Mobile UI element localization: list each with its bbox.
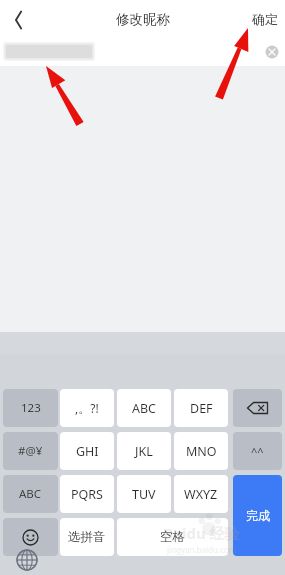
button[interactable]: PQRS [60, 475, 114, 513]
button[interactable]: GHI [60, 432, 114, 470]
staticText: #@¥ [18, 443, 43, 459]
button[interactable]: #@¥ [3, 432, 58, 470]
button[interactable]: ABC [3, 475, 58, 513]
button[interactable]: 选拼音 [60, 518, 114, 556]
staticText: TUV [132, 486, 156, 503]
button[interactable]: Clear text [265, 45, 279, 59]
staticText: 123 [21, 400, 41, 416]
staticText: GHI [76, 443, 99, 460]
button[interactable]: ,。?! [60, 389, 114, 427]
staticText: DEF [190, 400, 213, 417]
button[interactable]: Emoji [3, 518, 58, 556]
button[interactable]: 空格 [117, 518, 228, 556]
staticText: 选拼音 [68, 529, 106, 545]
staticText: ^^ [251, 444, 264, 459]
button[interactable]: WXYZ [174, 475, 228, 513]
button[interactable]: MNO [174, 432, 228, 470]
button[interactable]: JKL [117, 432, 171, 470]
staticText: 修改昵称 [116, 11, 170, 28]
staticText: 确定 [252, 11, 278, 27]
button[interactable]: 完成 [233, 475, 282, 556]
button[interactable]: Back [4, 7, 30, 33]
button[interactable]: DEF [174, 389, 228, 427]
staticText: ,。?! [75, 400, 99, 416]
button[interactable]: TUV [117, 475, 171, 513]
staticText: ABC [132, 400, 157, 417]
staticText: Baidu 经验 [163, 523, 240, 543]
button[interactable]: 确定 [244, 0, 285, 38]
button[interactable]: Switch keyboard language [16, 549, 38, 571]
staticText: PQRS [71, 486, 103, 503]
button[interactable]: ^^ [233, 432, 282, 470]
staticText: MNO [186, 443, 217, 460]
staticText: ABC [19, 486, 42, 502]
staticText: 空格 [160, 529, 185, 545]
button[interactable]: ABC [117, 389, 171, 427]
button[interactable]: Backspace [233, 389, 282, 427]
staticText: 完成 [246, 508, 270, 523]
staticText: WXYZ [184, 486, 218, 503]
button[interactable]: Clear text [0, 38, 285, 66]
staticText: JKL [135, 443, 153, 460]
staticText: jingyan.baidu.com [167, 544, 237, 555]
button[interactable]: 123 [3, 389, 58, 427]
